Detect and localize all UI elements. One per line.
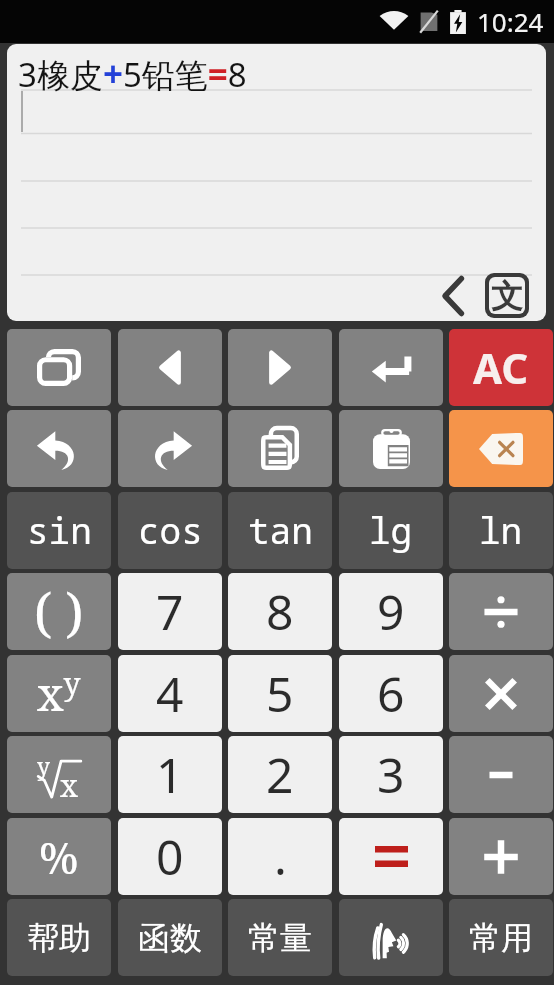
staticText: sin bbox=[27, 506, 92, 555]
button[interactable]: 2 bbox=[228, 736, 332, 813]
button[interactable]: 8 bbox=[228, 573, 332, 650]
button[interactable]: Minus bbox=[449, 736, 553, 813]
button[interactable]: 4 bbox=[118, 655, 222, 732]
button[interactable]: 帮助 bbox=[7, 899, 111, 976]
button[interactable]: Undo bbox=[7, 410, 111, 487]
button[interactable]: Plus bbox=[449, 818, 553, 895]
staticText: AC bbox=[473, 339, 529, 396]
staticText: tan bbox=[248, 506, 313, 555]
button[interactable]: Redo bbox=[118, 410, 222, 487]
button[interactable]: ( ) bbox=[7, 573, 111, 650]
staticText: . bbox=[274, 824, 287, 889]
staticText: 1 bbox=[156, 742, 184, 807]
button[interactable]: ln bbox=[449, 492, 553, 569]
staticText: x bbox=[60, 764, 78, 806]
staticText: 7 bbox=[156, 579, 184, 644]
staticText: ln bbox=[479, 506, 523, 555]
staticText: 4 bbox=[156, 661, 184, 726]
button[interactable]: cos bbox=[118, 492, 222, 569]
button[interactable]: Equals bbox=[339, 818, 443, 895]
staticText: 10:24 bbox=[477, 4, 544, 39]
button[interactable]: Paste bbox=[339, 410, 443, 487]
staticText: 常用 bbox=[469, 918, 533, 958]
staticText: 帮助 bbox=[27, 918, 91, 958]
staticText: y bbox=[37, 750, 50, 781]
button[interactable]: 5 bbox=[228, 655, 332, 732]
button[interactable]: Screens bbox=[7, 329, 111, 406]
staticText: 8 bbox=[266, 579, 294, 644]
button[interactable]: Copy bbox=[228, 410, 332, 487]
button[interactable]: . bbox=[228, 818, 332, 895]
button[interactable]: 常用 bbox=[449, 899, 553, 976]
button[interactable]: Speak bbox=[339, 899, 443, 976]
button[interactable]: 7 bbox=[118, 573, 222, 650]
button[interactable]: 常量 bbox=[228, 899, 332, 976]
button[interactable]: 3 bbox=[339, 736, 443, 813]
button[interactable]: Multiply bbox=[449, 655, 553, 732]
staticText: cos bbox=[138, 506, 203, 555]
button[interactable]: Move left bbox=[118, 329, 222, 406]
button[interactable]: Enter bbox=[339, 329, 443, 406]
staticText: lg bbox=[369, 506, 413, 555]
button[interactable]: Back bbox=[434, 268, 472, 321]
staticText: 9 bbox=[377, 579, 405, 644]
button[interactable]: Move right bbox=[228, 329, 332, 406]
staticText: 函数 bbox=[138, 918, 202, 958]
staticText: 3橡皮+5铅笔=8 bbox=[18, 50, 247, 98]
staticText: % bbox=[39, 827, 79, 887]
staticText: 2 bbox=[266, 742, 294, 807]
button[interactable]: sin bbox=[7, 492, 111, 569]
button[interactable]: 函数 bbox=[118, 899, 222, 976]
staticText: 3 bbox=[377, 742, 405, 807]
button[interactable]: 0 bbox=[118, 818, 222, 895]
button[interactable]: Divide bbox=[449, 573, 553, 650]
staticText: ( ) bbox=[34, 576, 84, 647]
staticText: xy bbox=[37, 662, 81, 725]
button[interactable]: Root bbox=[7, 736, 111, 813]
staticText: 6 bbox=[377, 661, 405, 726]
staticText: 文 bbox=[491, 277, 523, 313]
button[interactable]: Language bbox=[485, 273, 529, 318]
button[interactable]: 6 bbox=[339, 655, 443, 732]
button[interactable]: 1 bbox=[118, 736, 222, 813]
button[interactable]: lg bbox=[339, 492, 443, 569]
staticText: 常量 bbox=[248, 918, 312, 958]
button[interactable]: Power bbox=[7, 655, 111, 732]
staticText: 5 bbox=[266, 661, 294, 726]
button[interactable]: % bbox=[7, 818, 111, 895]
button[interactable]: 9 bbox=[339, 573, 443, 650]
button[interactable]: AC bbox=[449, 329, 553, 406]
button[interactable]: Backspace bbox=[449, 410, 553, 487]
button[interactable]: tan bbox=[228, 492, 332, 569]
staticText: 0 bbox=[156, 824, 184, 889]
